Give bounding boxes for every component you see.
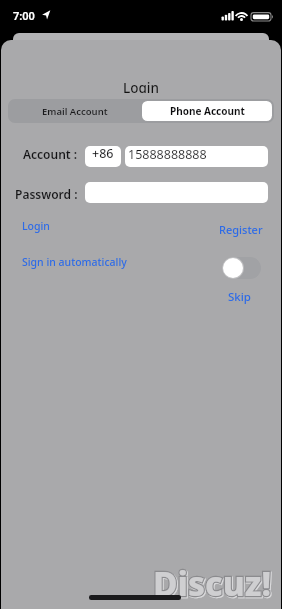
- staticText: Discuz!: [153, 560, 272, 606]
- button[interactable]: Email Account: [8, 99, 141, 123]
- button[interactable]: Sign in automatically: [22, 255, 127, 269]
- staticText: Email Account: [42, 105, 108, 118]
- staticText: Account :: [23, 146, 78, 161]
- staticText: Sign in automatically: [22, 255, 127, 269]
- staticText: Login: [22, 219, 50, 233]
- button[interactable]: [222, 257, 261, 279]
- staticText: +86: [92, 146, 114, 162]
- button[interactable]: Phone Account: [142, 101, 272, 121]
- staticText: Register: [219, 222, 263, 237]
- button[interactable]: [85, 182, 268, 203]
- staticText: Discuz!: [154, 561, 273, 607]
- staticText: 15888888888: [128, 146, 207, 163]
- staticText: Phone Account: [170, 104, 245, 118]
- staticText: Password :: [15, 186, 78, 201]
- staticText: Login: [123, 79, 159, 93]
- button[interactable]: Skip: [228, 289, 251, 305]
- staticText: 7:00: [13, 8, 35, 23]
- button[interactable]: +86: [85, 146, 121, 167]
- staticText: Skip: [228, 289, 251, 305]
- staticText: Discuz!: [153, 560, 272, 606]
- button[interactable]: Login: [22, 219, 50, 233]
- button[interactable]: Register: [219, 222, 263, 237]
- button[interactable]: 15888888888: [125, 146, 268, 167]
